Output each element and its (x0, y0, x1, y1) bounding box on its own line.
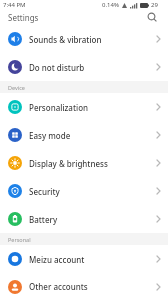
button[interactable] (147, 12, 158, 23)
button[interactable]: Display & brightness (0, 149, 168, 177)
staticText: 0.14% (102, 1, 121, 9)
staticText: Sounds & vibration (29, 34, 102, 45)
staticText: Security (29, 186, 60, 197)
button[interactable]: Other accounts (0, 273, 168, 300)
button[interactable]: Sounds & vibration (0, 25, 168, 53)
staticText: 29 (151, 1, 158, 9)
staticText: Other accounts (29, 281, 88, 292)
staticText: Do not disturb (29, 62, 85, 73)
staticText: Device (8, 84, 25, 91)
staticText: Easy mode (29, 130, 71, 141)
staticText: Battery (29, 214, 58, 225)
button[interactable]: Personalization (0, 93, 168, 121)
button[interactable]: Do not disturb (0, 53, 168, 81)
staticText: Meizu account (29, 254, 85, 265)
button[interactable]: Security (0, 177, 168, 205)
button[interactable]: Meizu account (0, 245, 168, 273)
staticText: Display & brightness (29, 158, 108, 169)
staticText: Settings (8, 12, 39, 23)
staticText: Personalization (29, 102, 89, 113)
button[interactable]: Easy mode (0, 121, 168, 149)
staticText: 7:44 PM (3, 1, 26, 9)
staticText: Personal (8, 236, 31, 243)
button[interactable]: Battery (0, 205, 168, 233)
